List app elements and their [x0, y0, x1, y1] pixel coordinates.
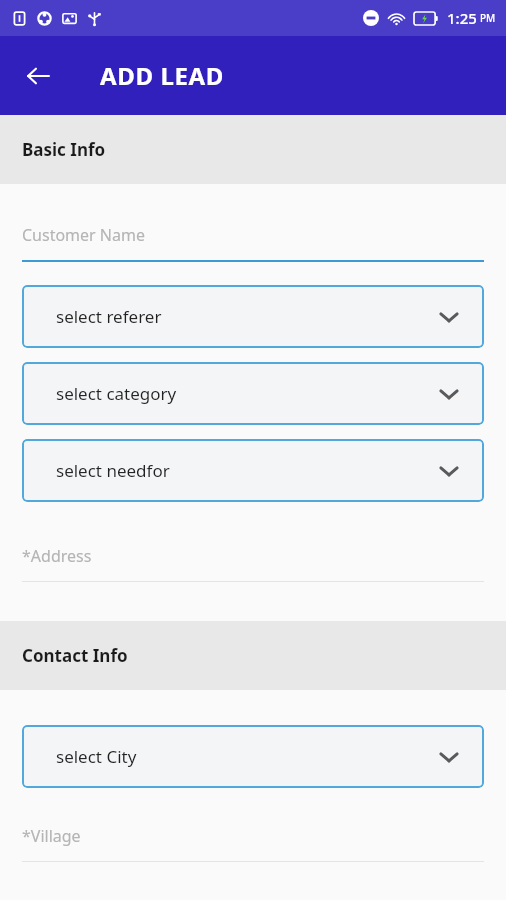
button[interactable]: Customer Name: [22, 224, 484, 262]
button[interactable]: select needfor: [22, 439, 484, 502]
staticText: PM: [480, 11, 496, 25]
staticText: Basic Info: [22, 138, 106, 161]
button[interactable]: *Address: [22, 545, 484, 582]
staticText: select City: [56, 745, 137, 768]
button[interactable]: Back: [14, 52, 62, 100]
staticText: select category: [56, 382, 177, 405]
staticText: 1:25: [447, 8, 477, 28]
button[interactable]: select category: [22, 362, 484, 425]
button[interactable]: *Village: [22, 825, 484, 862]
staticText: *Address: [22, 545, 92, 567]
staticText: select needfor: [56, 459, 170, 482]
staticText: select referer: [56, 305, 162, 328]
staticText: Contact Info: [22, 644, 128, 667]
staticText: *Village: [22, 825, 81, 847]
staticText: Customer Name: [22, 224, 145, 246]
staticText: ADD LEAD: [100, 59, 224, 92]
button[interactable]: select referer: [22, 285, 484, 348]
button[interactable]: select City: [22, 725, 484, 788]
